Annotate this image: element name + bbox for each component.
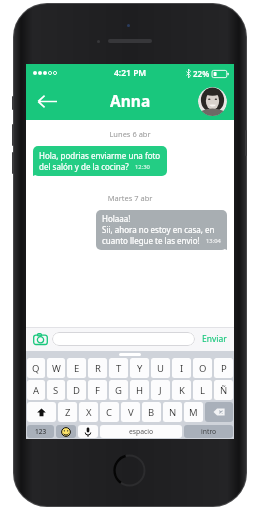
button[interactable]: Voice input [78, 425, 98, 438]
button[interactable]: Backspace [205, 402, 233, 422]
staticText: cuanto llegue te las envio! [102, 235, 200, 246]
staticText: F [95, 384, 100, 397]
button[interactable] [52, 332, 195, 346]
staticText: Enviar [202, 333, 227, 345]
staticText: espacio [129, 427, 154, 436]
button[interactable]: E [67, 358, 86, 378]
staticText: C [106, 406, 113, 419]
button[interactable]: L [193, 380, 212, 400]
staticText: Sii, ahora no estoy en casa, en [102, 224, 215, 235]
staticText: P [221, 362, 227, 375]
button[interactable]: intro [184, 425, 233, 438]
button[interactable]: C [100, 402, 119, 422]
staticText: J [159, 384, 162, 397]
staticText: 4:21 PM [114, 67, 147, 79]
button[interactable]: K [172, 380, 191, 400]
staticText: intro [201, 427, 217, 436]
button[interactable]: Y [130, 358, 149, 378]
staticText: del salón y de la cocina? [39, 161, 129, 172]
button[interactable]: A [27, 380, 45, 400]
button[interactable]: S [47, 380, 65, 400]
button[interactable]: J [151, 380, 170, 400]
staticText: O [199, 362, 207, 375]
staticText: 22% [193, 68, 210, 79]
button[interactable]: V [121, 402, 140, 422]
button[interactable]: N [163, 402, 182, 422]
staticText: H [136, 384, 144, 397]
button[interactable]: Emoji [56, 425, 76, 438]
button[interactable]: Contact profile [198, 87, 227, 116]
staticText: Anna [110, 90, 151, 111]
staticText: E [74, 362, 80, 375]
staticText: D [73, 384, 80, 397]
staticText: M [189, 406, 198, 419]
staticText: Ñ [220, 384, 228, 397]
button[interactable]: M [184, 402, 203, 422]
staticText: Hola, podrias enviarme una foto [39, 150, 161, 161]
staticText: X [86, 406, 92, 419]
staticText: Lunes 6 abr [26, 129, 234, 139]
staticText: U [157, 362, 164, 375]
staticText: V [128, 406, 134, 419]
button[interactable]: G [109, 380, 128, 400]
staticText: Q [32, 362, 40, 375]
button[interactable]: U [151, 358, 170, 378]
staticText: Martes 7 abr [26, 193, 234, 203]
staticText: G [115, 384, 122, 397]
button[interactable]: Enviar [200, 333, 229, 345]
button[interactable]: espacio [100, 425, 182, 438]
button[interactable]: Shift [27, 402, 56, 422]
staticText: 123 [35, 427, 47, 436]
button[interactable]: Z [58, 402, 77, 422]
button[interactable]: Back [34, 88, 60, 114]
staticText: S [53, 384, 59, 397]
staticText: A [33, 384, 40, 397]
button[interactable]: P [214, 358, 233, 378]
button[interactable]: 123 [27, 425, 54, 438]
button[interactable]: X [79, 402, 98, 422]
staticText: B [148, 406, 155, 419]
staticText: 13:04 [206, 237, 221, 245]
button[interactable]: B [142, 402, 161, 422]
button[interactable]: T [109, 358, 128, 378]
staticText: K [179, 384, 185, 397]
staticText: R [95, 362, 101, 375]
button[interactable]: Camera [31, 330, 49, 348]
button[interactable]: Ñ [214, 380, 233, 400]
staticText: Z [65, 406, 71, 419]
staticText: T [116, 362, 122, 375]
staticText: Holaaa! [102, 213, 131, 224]
button[interactable]: Holaaa! [96, 210, 227, 250]
staticText: W [52, 362, 61, 375]
button[interactable]: R [88, 358, 107, 378]
button[interactable]: O [193, 358, 212, 378]
button[interactable]: I [172, 358, 191, 378]
staticText: I [180, 362, 184, 375]
button[interactable]: W [47, 358, 65, 378]
staticText: N [169, 406, 177, 419]
staticText: Y [137, 362, 143, 375]
button[interactable]: Q [27, 358, 45, 378]
staticText: 12:30 [135, 163, 150, 171]
staticText: L [200, 384, 205, 397]
button[interactable]: H [130, 380, 149, 400]
button[interactable]: D [67, 380, 86, 400]
button[interactable]: F [88, 380, 107, 400]
button[interactable]: Hola, podrias enviarme una foto [33, 146, 167, 176]
